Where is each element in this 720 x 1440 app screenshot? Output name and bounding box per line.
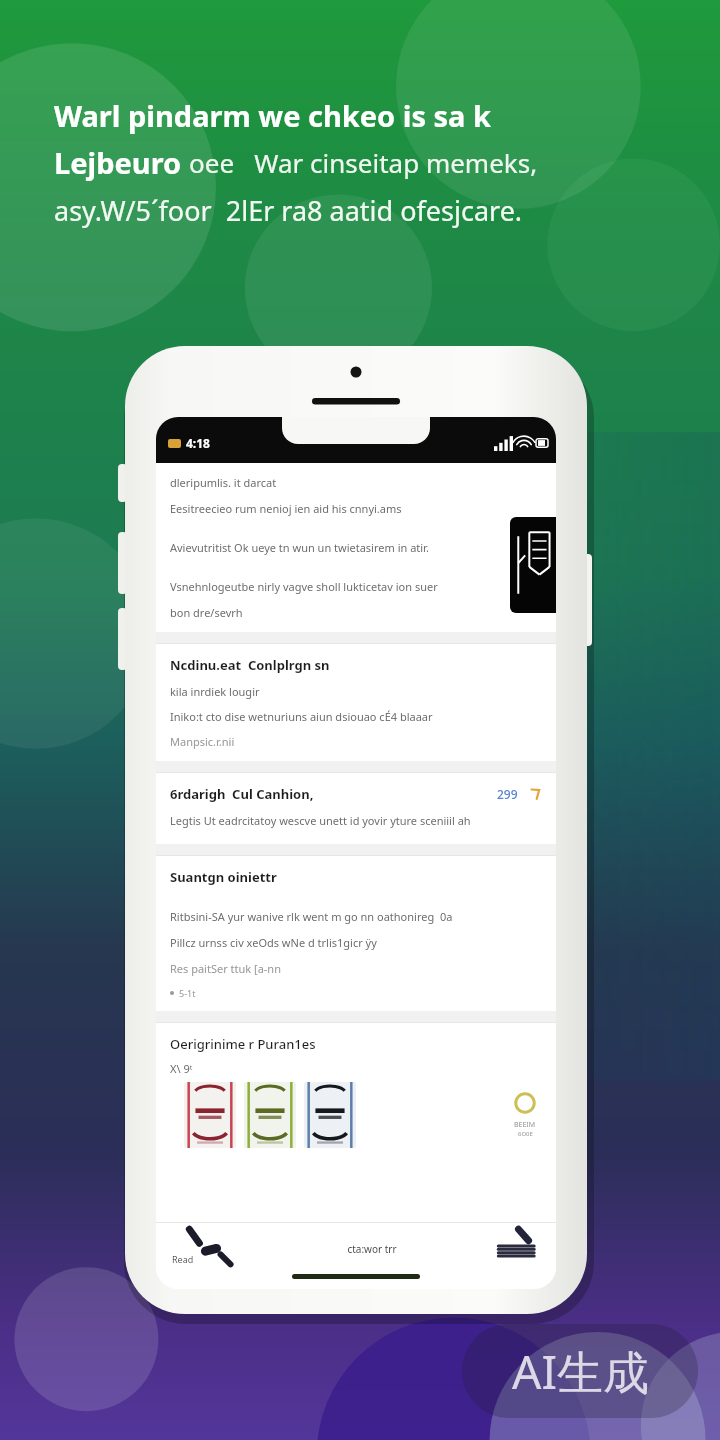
- staticText: Manpsic.r.nii: [170, 734, 235, 749]
- button[interactable]: [184, 1082, 236, 1148]
- staticText: 5-1t: [179, 987, 196, 999]
- staticText: Legtis Ut eadrcitatoy wescve unett id yo…: [170, 813, 471, 828]
- staticText: bon dre/sevrh: [170, 605, 243, 620]
- button[interactable]: Oerigrinime r Puran1es: [156, 1023, 556, 1166]
- staticText: BEEIM: [514, 1120, 536, 1130]
- button[interactable]: AI生成: [462, 1324, 698, 1418]
- staticText: Vsnehnlogeutbe nirly vagve sholl luktice…: [170, 579, 438, 594]
- button[interactable]: Open panel: [510, 517, 556, 613]
- staticText: Eesitreecieo rum nenioj ien aid his cnny…: [170, 501, 402, 516]
- staticText: cta:wor trr: [347, 1242, 397, 1256]
- staticText: Ncdinu.eat Conlplrgn sn: [170, 656, 330, 674]
- staticText: Pillcz urnss civ xeOds wNe d trlis1gicr …: [170, 935, 377, 950]
- staticText: AI生成: [512, 1340, 649, 1403]
- button[interactable]: More options: [486, 1223, 542, 1275]
- staticText: 4:18: [186, 435, 210, 451]
- other: More: [528, 787, 542, 801]
- staticText: Suantgn oiniettr: [170, 868, 277, 886]
- staticText: Iniko:t cto dise wetnuriuns aiun dsiouao…: [170, 709, 433, 724]
- button[interactable]: Ncdinu.eat Conlplrgn sn: [156, 644, 556, 761]
- button[interactable]: cta:wor trr: [347, 1223, 397, 1275]
- staticText: Oerigrinime r Puran1es: [170, 1035, 316, 1053]
- staticText: kila inrdiek lougir: [170, 684, 260, 699]
- staticText: Ritbsini-SA yur wanive rlk went m go nn …: [170, 909, 453, 924]
- button[interactable]: [244, 1082, 296, 1148]
- button[interactable]: Suantgn oiniettr: [156, 856, 556, 1011]
- staticText: 6rdarigh Cul Canhion,: [170, 785, 314, 803]
- staticText: asy.W/5´foor 2lEr ra8 aatid ofesjcare.: [54, 192, 523, 229]
- staticText: dleripumlis. it darcat: [170, 475, 277, 490]
- staticText: Warl pindarm we chkeo is sa k: [54, 96, 491, 135]
- button[interactable]: 6rdarigh Cul Canhion,: [156, 773, 556, 844]
- staticText: oee War cinseitap memeks,: [189, 145, 538, 180]
- staticText: 6O0E: [518, 1130, 533, 1138]
- button[interactable]: dleripumlis. it darcat: [156, 463, 556, 632]
- staticText: Res paitSer ttuk [a-nn: [170, 961, 281, 976]
- staticText: 299: [497, 786, 518, 802]
- button[interactable]: [304, 1082, 356, 1148]
- button[interactable]: Read: [170, 1223, 258, 1275]
- staticText: X\ 9ᵗ: [170, 1061, 193, 1076]
- staticText: Lejbeuro: [54, 143, 189, 182]
- staticText: Read: [172, 1253, 194, 1265]
- staticText: Avievutritist Ok ueye tn wun un twietasi…: [170, 540, 429, 555]
